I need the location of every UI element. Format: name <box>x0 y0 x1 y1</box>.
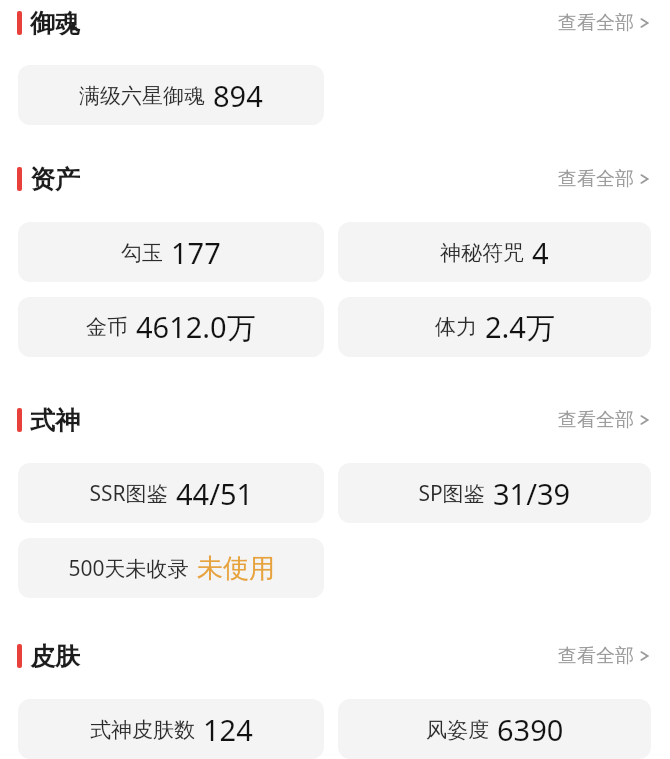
staticText: 2.4万 <box>485 307 555 347</box>
button[interactable]: 满级六星御魂 <box>18 65 324 125</box>
button[interactable]: 500天未收录 <box>18 538 324 598</box>
staticText: 查看全部 <box>558 408 634 432</box>
button[interactable]: 查看全部 <box>556 404 651 436</box>
staticText: 金币 <box>86 314 128 340</box>
staticText: 查看全部 <box>558 167 634 191</box>
staticText: SP图鉴 <box>418 479 485 508</box>
button[interactable]: 式神皮肤数 <box>18 699 324 759</box>
button[interactable]: 神秘符咒 <box>338 222 651 282</box>
button[interactable]: 查看全部 <box>556 7 651 39</box>
staticText: 4612.0万 <box>136 307 256 347</box>
staticText: 式神 <box>30 405 80 436</box>
button[interactable]: 查看全部 <box>556 163 651 195</box>
staticText: 177 <box>171 233 221 272</box>
button[interactable]: 金币 <box>18 297 324 357</box>
staticText: 资产 <box>30 164 80 195</box>
button[interactable]: 风姿度 <box>338 699 651 759</box>
button[interactable]: SP图鉴 <box>338 463 651 523</box>
staticText: 6390 <box>497 710 564 749</box>
staticText: 500天未收录 <box>68 554 189 583</box>
staticText: 满级六星御魂 <box>79 83 205 109</box>
staticText: 式神皮肤数 <box>90 717 195 743</box>
staticText: SSR图鉴 <box>89 479 168 508</box>
staticText: 894 <box>213 76 263 115</box>
staticText: 风姿度 <box>426 717 489 743</box>
staticText: 勾玉 <box>121 240 163 266</box>
staticText: 体力 <box>435 314 477 340</box>
button[interactable]: 查看全部 <box>556 640 651 672</box>
staticText: 未使用 <box>197 552 275 585</box>
staticText: 查看全部 <box>558 644 634 668</box>
staticText: 神秘符咒 <box>440 240 524 266</box>
button[interactable]: SSR图鉴 <box>18 463 324 523</box>
staticText: 124 <box>203 710 253 749</box>
button[interactable]: 勾玉 <box>18 222 324 282</box>
staticText: 31/39 <box>493 474 571 513</box>
staticText: 御魂 <box>30 8 80 39</box>
staticText: 皮肤 <box>30 641 80 672</box>
button[interactable]: 体力 <box>338 297 651 357</box>
staticText: 44/51 <box>176 474 254 513</box>
staticText: 查看全部 <box>558 11 634 35</box>
staticText: 4 <box>532 233 549 272</box>
